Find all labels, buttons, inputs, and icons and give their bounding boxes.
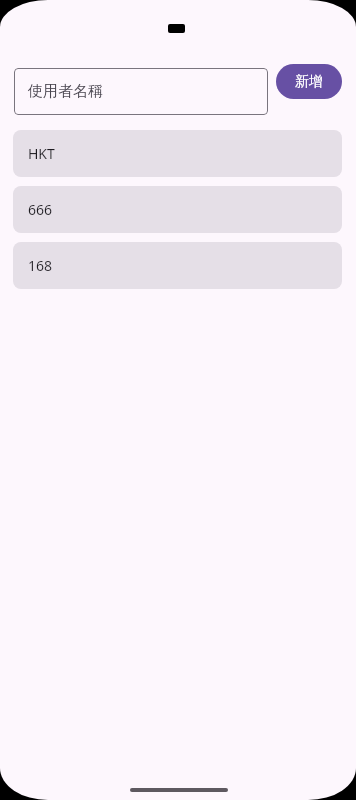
staticText: 新增: [295, 73, 323, 91]
button[interactable]: 168: [13, 242, 342, 289]
button[interactable]: 新增: [276, 64, 342, 99]
staticText: 168: [28, 256, 53, 275]
button[interactable]: HKT: [13, 130, 342, 177]
button[interactable]: 使用者名稱: [14, 68, 268, 115]
other: Home: [130, 788, 228, 792]
button[interactable]: 666: [13, 186, 342, 233]
staticText: 使用者名稱: [28, 82, 103, 101]
staticText: HKT: [28, 144, 55, 163]
other: Front camera: [168, 24, 185, 33]
staticText: 666: [28, 200, 53, 219]
